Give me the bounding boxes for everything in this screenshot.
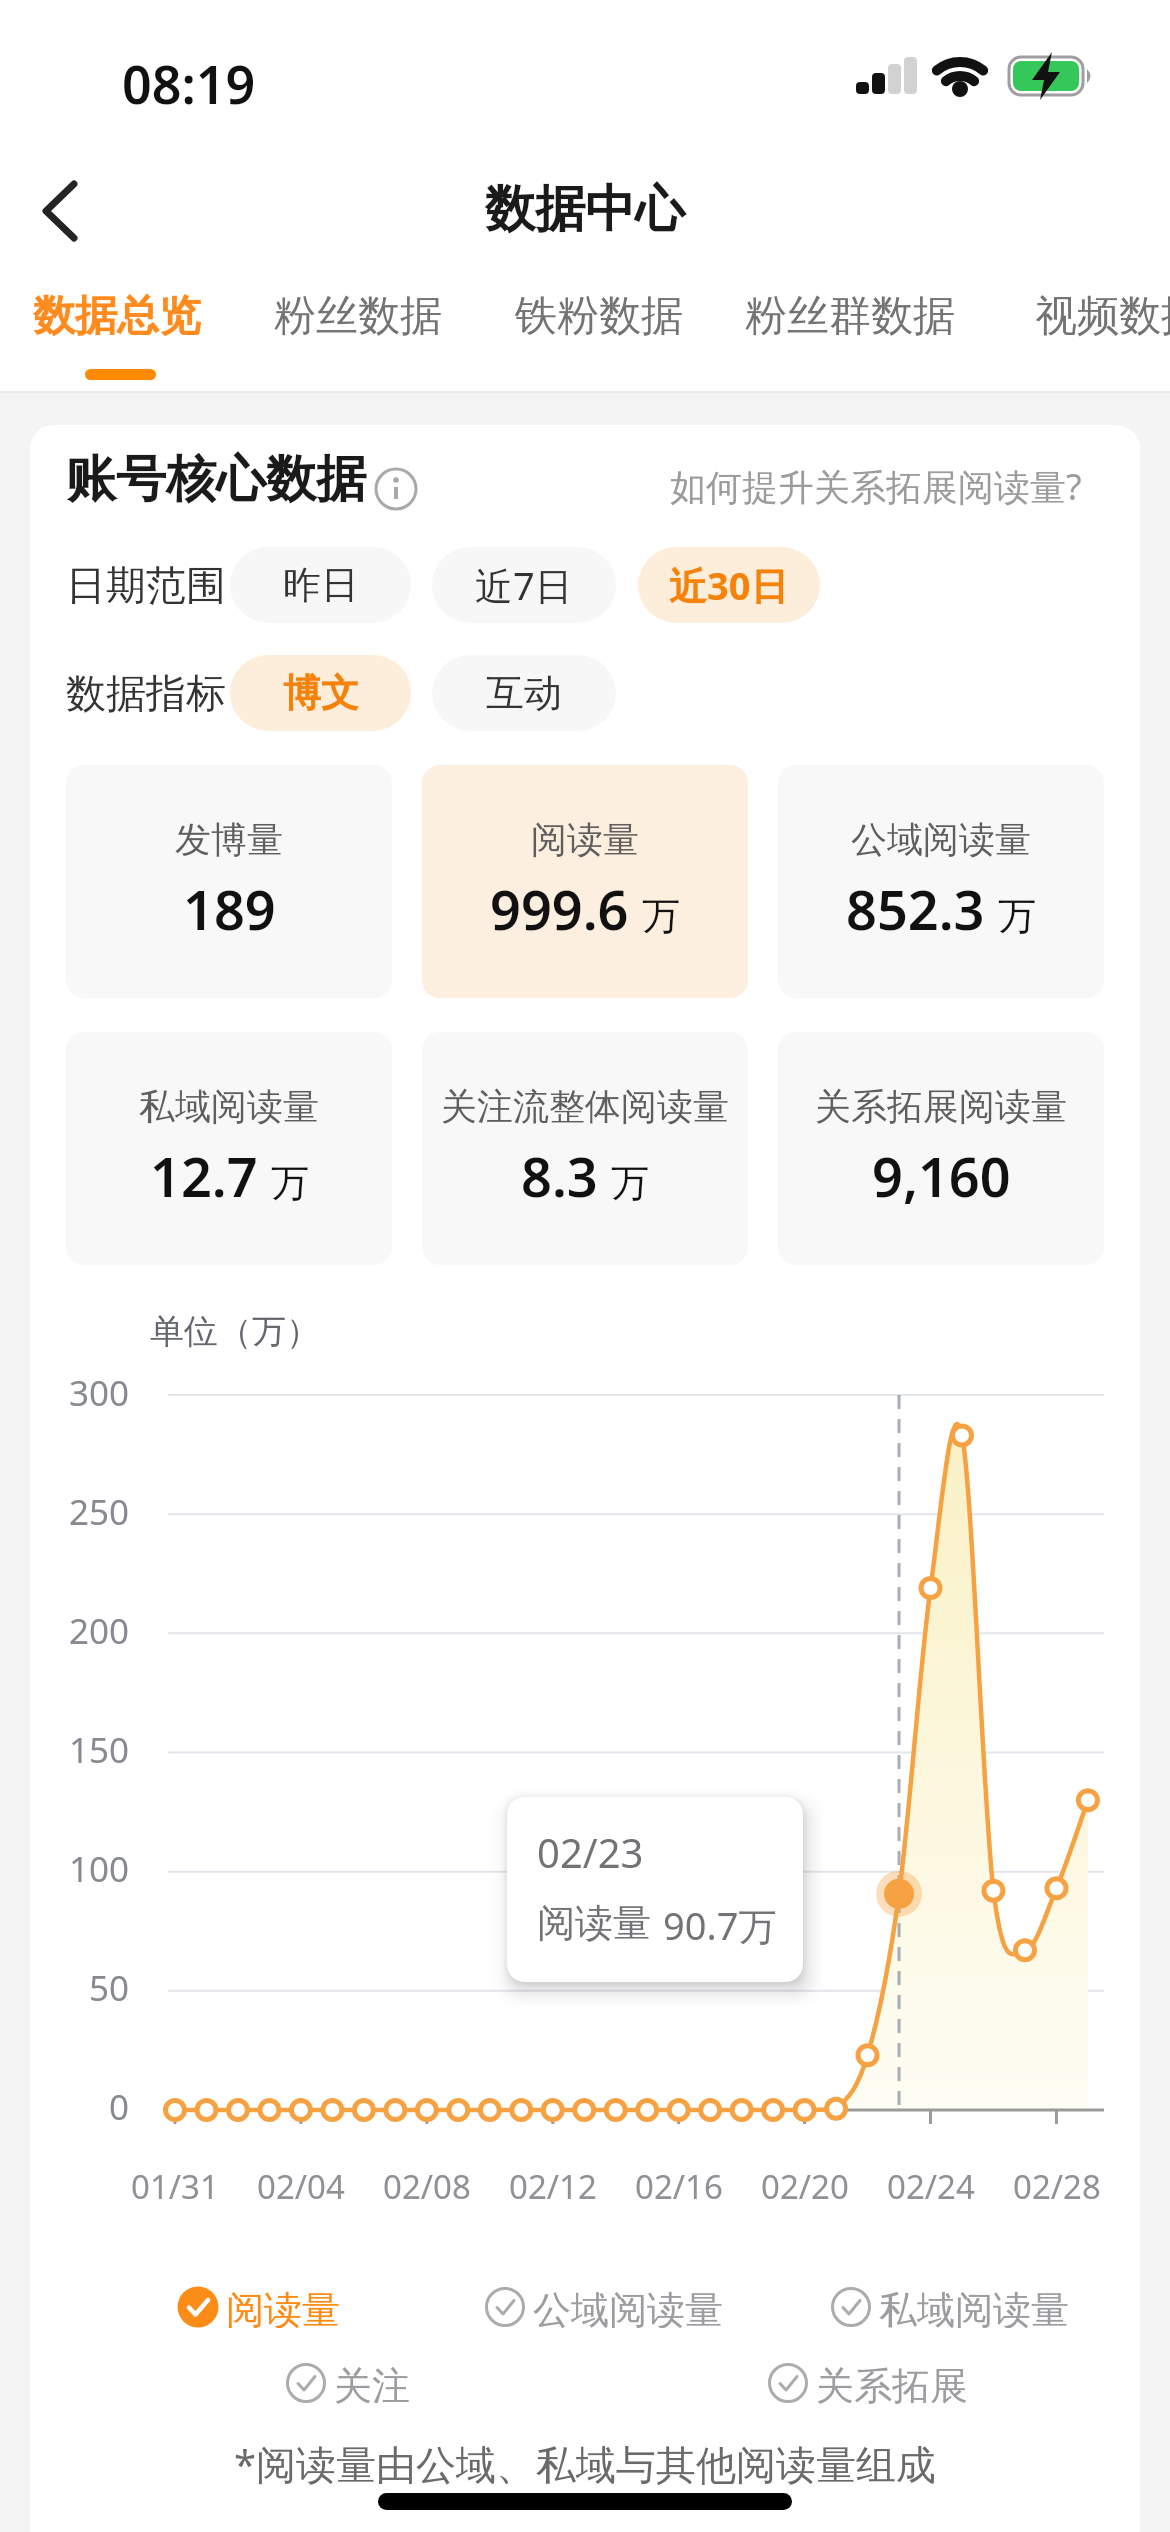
staticText: 01/31 <box>131 2164 219 2209</box>
staticText: 关注流整体阅读量 <box>441 1084 729 1129</box>
staticText: 发博量 <box>175 817 283 862</box>
staticText: 关系拓展阅读量 <box>815 1084 1067 1129</box>
button[interactable]: 阅读量 <box>422 765 748 998</box>
staticText: 近7日 <box>475 559 573 611</box>
staticText: 300 <box>69 1369 130 1417</box>
staticText: 9,160 <box>872 1139 1011 1213</box>
staticText: 博文 <box>283 669 359 717</box>
staticText: 日期范围 <box>66 560 226 610</box>
button[interactable]: 发博量 <box>66 765 392 998</box>
staticText: 关注 <box>334 2362 410 2404</box>
staticText: *阅读量由公域、私域与其他阅读量组成 <box>234 2436 937 2491</box>
button[interactable]: 粉丝数据 <box>274 290 442 343</box>
staticText: 02/08 <box>383 2164 471 2209</box>
staticText: 02/04 <box>257 2164 345 2209</box>
staticText: 万 <box>642 892 680 940</box>
staticText: 数据总览 <box>33 290 201 343</box>
staticText: 08:19 <box>122 48 256 119</box>
staticText: 200 <box>69 1607 130 1655</box>
staticText: 02/20 <box>761 2164 849 2209</box>
button[interactable]: 近30日 <box>638 547 820 623</box>
staticText: 02/28 <box>1013 2164 1101 2209</box>
staticText: 私域阅读量 <box>879 2286 1069 2328</box>
button[interactable]: 视频数据 <box>1035 290 1170 343</box>
staticText: 250 <box>69 1488 130 1536</box>
staticText: 公域阅读量 <box>533 2286 723 2328</box>
staticText: 02/16 <box>635 2164 723 2209</box>
button[interactable]: 关系拓展 <box>767 2362 968 2404</box>
button[interactable]: 关注流整体阅读量 <box>422 1032 748 1265</box>
staticText: 近30日 <box>669 559 789 611</box>
staticText: 852.3 <box>846 872 985 946</box>
staticText: 铁粉数据 <box>515 290 683 343</box>
button[interactable] <box>28 172 108 252</box>
button[interactable]: 互动 <box>432 655 616 731</box>
button[interactable]: 关注 <box>285 2362 410 2404</box>
staticText: 粉丝数据 <box>274 290 442 343</box>
staticText: 数据中心 <box>485 178 685 241</box>
staticText: 0 <box>109 2083 130 2131</box>
button[interactable]: 近7日 <box>432 547 616 623</box>
staticText: 90.7万 <box>663 1899 777 1951</box>
button[interactable]: 如何提升关系拓展阅读量? <box>670 462 1082 511</box>
staticText: 阅读量 <box>226 2286 340 2328</box>
staticText: 万 <box>271 1159 309 1207</box>
staticText: 私域阅读量 <box>139 1084 319 1129</box>
button[interactable]: 铁粉数据 <box>515 290 683 343</box>
button[interactable]: 私域阅读量 <box>830 2286 1069 2328</box>
staticText: 02/24 <box>887 2164 975 2209</box>
button[interactable]: 公域阅读量 <box>484 2286 723 2328</box>
staticText: 100 <box>69 1845 130 1893</box>
staticText: 昨日 <box>283 561 359 609</box>
staticText: 数据指标 <box>66 668 226 718</box>
button[interactable]: 粉丝群数据 <box>745 290 955 343</box>
button[interactable]: 公域阅读量 <box>778 765 1104 998</box>
button[interactable]: 昨日 <box>230 547 411 623</box>
staticText: 万 <box>998 892 1036 940</box>
staticText: 50 <box>89 1964 130 2012</box>
staticText: 12.7 <box>150 1139 258 1213</box>
button[interactable]: 私域阅读量 <box>66 1032 392 1265</box>
button[interactable]: 数据总览 <box>33 290 201 343</box>
staticText: 02/12 <box>509 2164 597 2209</box>
staticText: 万 <box>611 1159 649 1207</box>
staticText: 视频数据 <box>1035 290 1170 343</box>
staticText: 互动 <box>486 669 562 717</box>
button[interactable]: 关系拓展阅读量 <box>778 1032 1104 1265</box>
staticText: 公域阅读量 <box>851 817 1031 862</box>
staticText: 999.6 <box>490 872 629 946</box>
staticText: 150 <box>69 1726 130 1774</box>
staticText: 189 <box>183 872 276 946</box>
staticText: 粉丝群数据 <box>745 290 955 343</box>
button[interactable] <box>374 467 418 511</box>
staticText: 阅读量 <box>531 817 639 862</box>
staticText: 单位（万） <box>150 1310 320 1353</box>
staticText: 8.3 <box>521 1139 598 1213</box>
staticText: 02/23 <box>537 1825 644 1879</box>
staticText: 关系拓展 <box>816 2362 968 2404</box>
staticText: 如何提升关系拓展阅读量? <box>670 462 1082 511</box>
button[interactable]: 阅读量 <box>177 2286 340 2328</box>
button[interactable]: 博文 <box>230 655 411 731</box>
staticText: 账号核心数据 <box>66 448 366 511</box>
staticText: 阅读量 <box>537 1899 651 1947</box>
